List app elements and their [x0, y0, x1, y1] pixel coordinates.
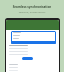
staticText: Seamless synchronisation	[0, 5, 64, 9]
staticText: Fabulous, trusted results	[0, 11, 64, 14]
